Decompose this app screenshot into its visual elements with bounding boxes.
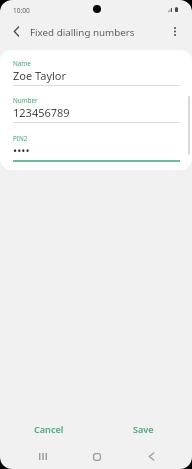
button[interactable]: Save [113, 418, 173, 440]
staticText: Save [133, 423, 154, 435]
button[interactable]: Recent apps [28, 444, 58, 469]
staticText: PIN2 [13, 134, 28, 143]
button[interactable]: Home [82, 444, 112, 469]
staticText: 123456789 [13, 105, 70, 120]
staticText: Fixed dialling numbers [30, 26, 135, 39]
button[interactable]: More options [162, 19, 187, 44]
button[interactable]: Cancel [19, 418, 79, 440]
button[interactable]: Back [136, 444, 166, 469]
staticText: Name [13, 59, 31, 68]
staticText: Cancel [34, 423, 64, 435]
staticText: 10:00 [13, 6, 30, 15]
staticText: Zoe Taylor [13, 68, 67, 83]
staticText: •••• [13, 143, 30, 158]
button[interactable]: Navigate up [4, 19, 29, 44]
staticText: Number [13, 96, 38, 105]
